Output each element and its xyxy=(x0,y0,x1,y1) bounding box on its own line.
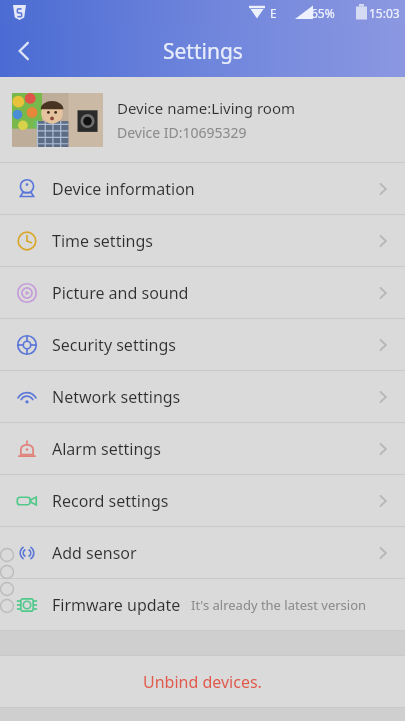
staticText: Settings xyxy=(163,37,243,66)
staticText: Unbind devices. xyxy=(143,671,262,693)
button[interactable]: Firmware update xyxy=(0,579,405,630)
staticText: 15:03 xyxy=(369,5,400,21)
staticText: Picture and sound xyxy=(52,282,189,304)
button[interactable]: Record settings xyxy=(0,475,405,526)
staticText: Firmware update xyxy=(52,594,181,616)
staticText: Alarm settings xyxy=(52,438,161,460)
staticText: Device name:Living room xyxy=(117,98,296,118)
staticText: Device information xyxy=(52,178,195,200)
button[interactable]: Back xyxy=(0,27,48,75)
button[interactable]: Unbind devices. xyxy=(0,656,405,707)
button[interactable]: Device information xyxy=(0,163,405,214)
button[interactable]: Security settings xyxy=(0,319,405,370)
staticText: E xyxy=(270,5,277,21)
button[interactable]: Time settings xyxy=(0,215,405,266)
button[interactable]: Picture and sound xyxy=(0,267,405,318)
staticText: Record settings xyxy=(52,490,169,512)
staticText: Time settings xyxy=(52,230,153,252)
staticText: Add sensor xyxy=(52,542,137,564)
button[interactable]: Network settings xyxy=(0,371,405,422)
staticText: It's already the latest version xyxy=(191,596,367,614)
staticText: Network settings xyxy=(52,386,181,408)
staticText: Security settings xyxy=(52,334,176,356)
staticText: Device ID:10695329 xyxy=(117,123,247,142)
button[interactable]: Alarm settings xyxy=(0,423,405,474)
button[interactable]: Add sensor xyxy=(0,527,405,578)
staticText: 65% xyxy=(311,5,335,21)
